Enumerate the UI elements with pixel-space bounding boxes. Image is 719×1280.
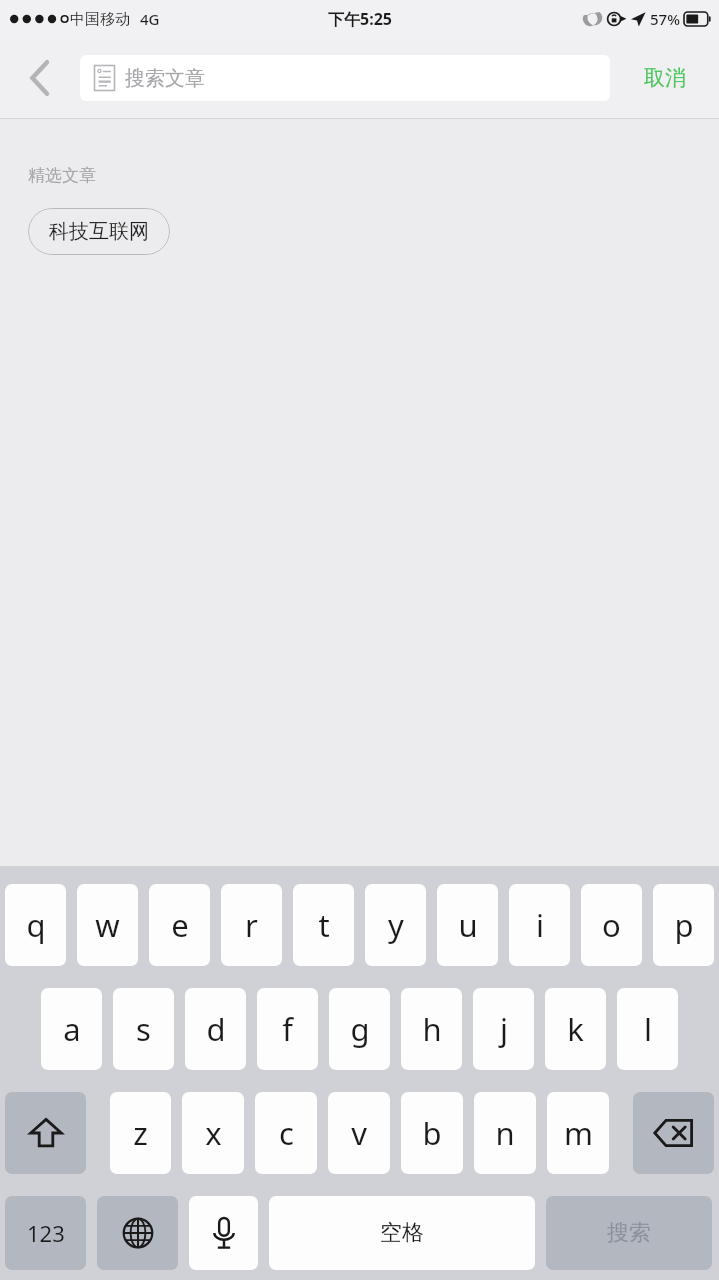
- staticText: p: [674, 904, 694, 946]
- button[interactable]: 科技互联网: [28, 208, 170, 255]
- button[interactable]: 123: [5, 1196, 86, 1270]
- staticText: 精选文章: [28, 165, 96, 186]
- button[interactable]: k: [545, 988, 606, 1070]
- button[interactable]: 搜索: [546, 1196, 712, 1270]
- staticText: f: [282, 1008, 293, 1050]
- staticText: j: [500, 1008, 508, 1050]
- button[interactable]: z: [110, 1092, 171, 1174]
- staticText: n: [495, 1112, 515, 1154]
- staticText: l: [644, 1008, 652, 1050]
- button[interactable]: b: [401, 1092, 463, 1174]
- staticText: 123: [27, 1218, 65, 1248]
- button[interactable]: m: [547, 1092, 609, 1174]
- staticText: u: [458, 904, 478, 946]
- staticText: q: [26, 904, 46, 946]
- staticText: x: [205, 1112, 222, 1154]
- button[interactable]: e: [149, 884, 210, 966]
- button[interactable]: w: [77, 884, 138, 966]
- staticText: 下午5:25: [328, 8, 392, 30]
- staticText: k: [567, 1008, 584, 1050]
- button[interactable]: s: [113, 988, 174, 1070]
- staticText: d: [206, 1008, 226, 1050]
- staticText: s: [136, 1008, 151, 1050]
- staticText: 57%: [650, 9, 680, 29]
- button[interactable]: o: [581, 884, 642, 966]
- button[interactable]: Back: [0, 38, 80, 118]
- staticText: 中国移动: [70, 10, 130, 29]
- button[interactable]: i: [509, 884, 570, 966]
- button[interactable]: q: [5, 884, 66, 966]
- button[interactable]: c: [255, 1092, 317, 1174]
- button[interactable]: g: [329, 988, 390, 1070]
- button[interactable]: x: [182, 1092, 244, 1174]
- button[interactable]: y: [365, 884, 426, 966]
- staticText: y: [388, 904, 404, 946]
- staticText: h: [422, 1008, 442, 1050]
- staticText: 空格: [380, 1219, 424, 1247]
- button[interactable]: p: [653, 884, 714, 966]
- button[interactable]: 取消: [610, 38, 719, 118]
- button[interactable]: 空格: [269, 1196, 535, 1270]
- button[interactable]: Voice input: [189, 1196, 258, 1270]
- button[interactable]: Backspace: [633, 1092, 714, 1174]
- button[interactable]: Shift: [5, 1092, 86, 1174]
- button[interactable]: u: [437, 884, 498, 966]
- staticText: r: [245, 904, 258, 946]
- button[interactable]: l: [617, 988, 678, 1070]
- staticText: 科技互联网: [49, 219, 149, 244]
- button[interactable]: t: [293, 884, 354, 966]
- button[interactable]: h: [401, 988, 462, 1070]
- staticText: z: [133, 1112, 148, 1154]
- button[interactable]: r: [221, 884, 282, 966]
- staticText: w: [95, 904, 120, 946]
- button[interactable]: a: [41, 988, 102, 1070]
- button[interactable]: j: [473, 988, 534, 1070]
- staticText: o: [602, 904, 621, 946]
- button[interactable]: v: [328, 1092, 390, 1174]
- button[interactable]: 搜索文章: [80, 55, 610, 101]
- button[interactable]: d: [185, 988, 246, 1070]
- staticText: 4G: [140, 9, 160, 29]
- button[interactable]: n: [474, 1092, 536, 1174]
- staticText: b: [422, 1112, 442, 1154]
- staticText: v: [351, 1112, 367, 1154]
- staticText: i: [536, 904, 544, 946]
- staticText: 取消: [644, 65, 686, 91]
- staticText: 搜索文章: [125, 66, 205, 91]
- staticText: c: [279, 1112, 294, 1154]
- staticText: a: [63, 1008, 81, 1050]
- staticText: 搜索: [607, 1219, 651, 1247]
- button[interactable]: Switch keyboard: [97, 1196, 178, 1270]
- staticText: g: [350, 1008, 370, 1050]
- staticText: e: [171, 904, 189, 946]
- button[interactable]: f: [257, 988, 318, 1070]
- staticText: t: [318, 904, 330, 946]
- staticText: m: [564, 1112, 593, 1154]
